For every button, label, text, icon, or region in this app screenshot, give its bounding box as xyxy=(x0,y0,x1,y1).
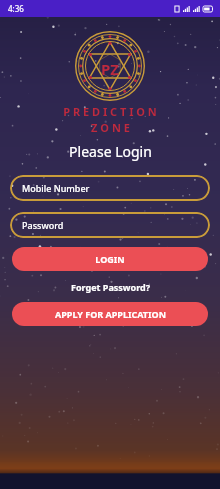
button[interactable]: LOGIN xyxy=(12,247,208,271)
button[interactable]: Mobile Number xyxy=(10,175,210,201)
staticText: Forget Password? xyxy=(71,281,150,293)
staticText: Mobile Number xyxy=(22,182,90,194)
staticText: APPLY FOR APPLICATION xyxy=(55,308,166,320)
staticText: Password xyxy=(22,219,64,231)
button[interactable]: APPLY FOR APPLICATION xyxy=(12,302,208,326)
button[interactable]: Forget Password? xyxy=(63,278,158,296)
button[interactable]: Password xyxy=(10,212,210,238)
staticText: Please Login xyxy=(69,142,152,161)
staticText: PZ xyxy=(101,59,119,79)
staticText: P R E D I C T I O N xyxy=(63,104,157,119)
staticText: LOGIN xyxy=(95,253,125,265)
staticText: Z O N E xyxy=(91,120,130,135)
staticText: 4:36 xyxy=(8,3,24,14)
